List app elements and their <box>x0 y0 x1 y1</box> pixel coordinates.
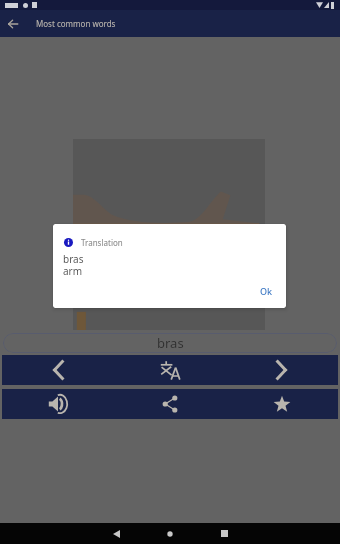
button[interactable]: Favorite <box>226 389 338 419</box>
staticText: Most common words <box>36 18 116 29</box>
button[interactable]: bras <box>3 333 337 353</box>
button[interactable]: Home <box>152 523 188 544</box>
button[interactable]: Back <box>98 523 134 544</box>
staticText: bras <box>63 252 84 266</box>
staticText: Ok <box>260 285 273 297</box>
staticText: arm <box>63 264 83 278</box>
button[interactable]: Share <box>114 389 226 419</box>
button[interactable]: Ok <box>260 285 273 297</box>
button[interactable]: Recents <box>206 523 242 544</box>
button[interactable]: Previous <box>2 355 114 385</box>
staticText: bras <box>157 334 184 352</box>
button[interactable]: Speak <box>2 389 114 419</box>
button[interactable]: Back <box>0 10 26 37</box>
button[interactable]: Next <box>226 355 338 385</box>
button[interactable]: Translate <box>114 355 226 385</box>
staticText: Translation <box>81 237 123 248</box>
